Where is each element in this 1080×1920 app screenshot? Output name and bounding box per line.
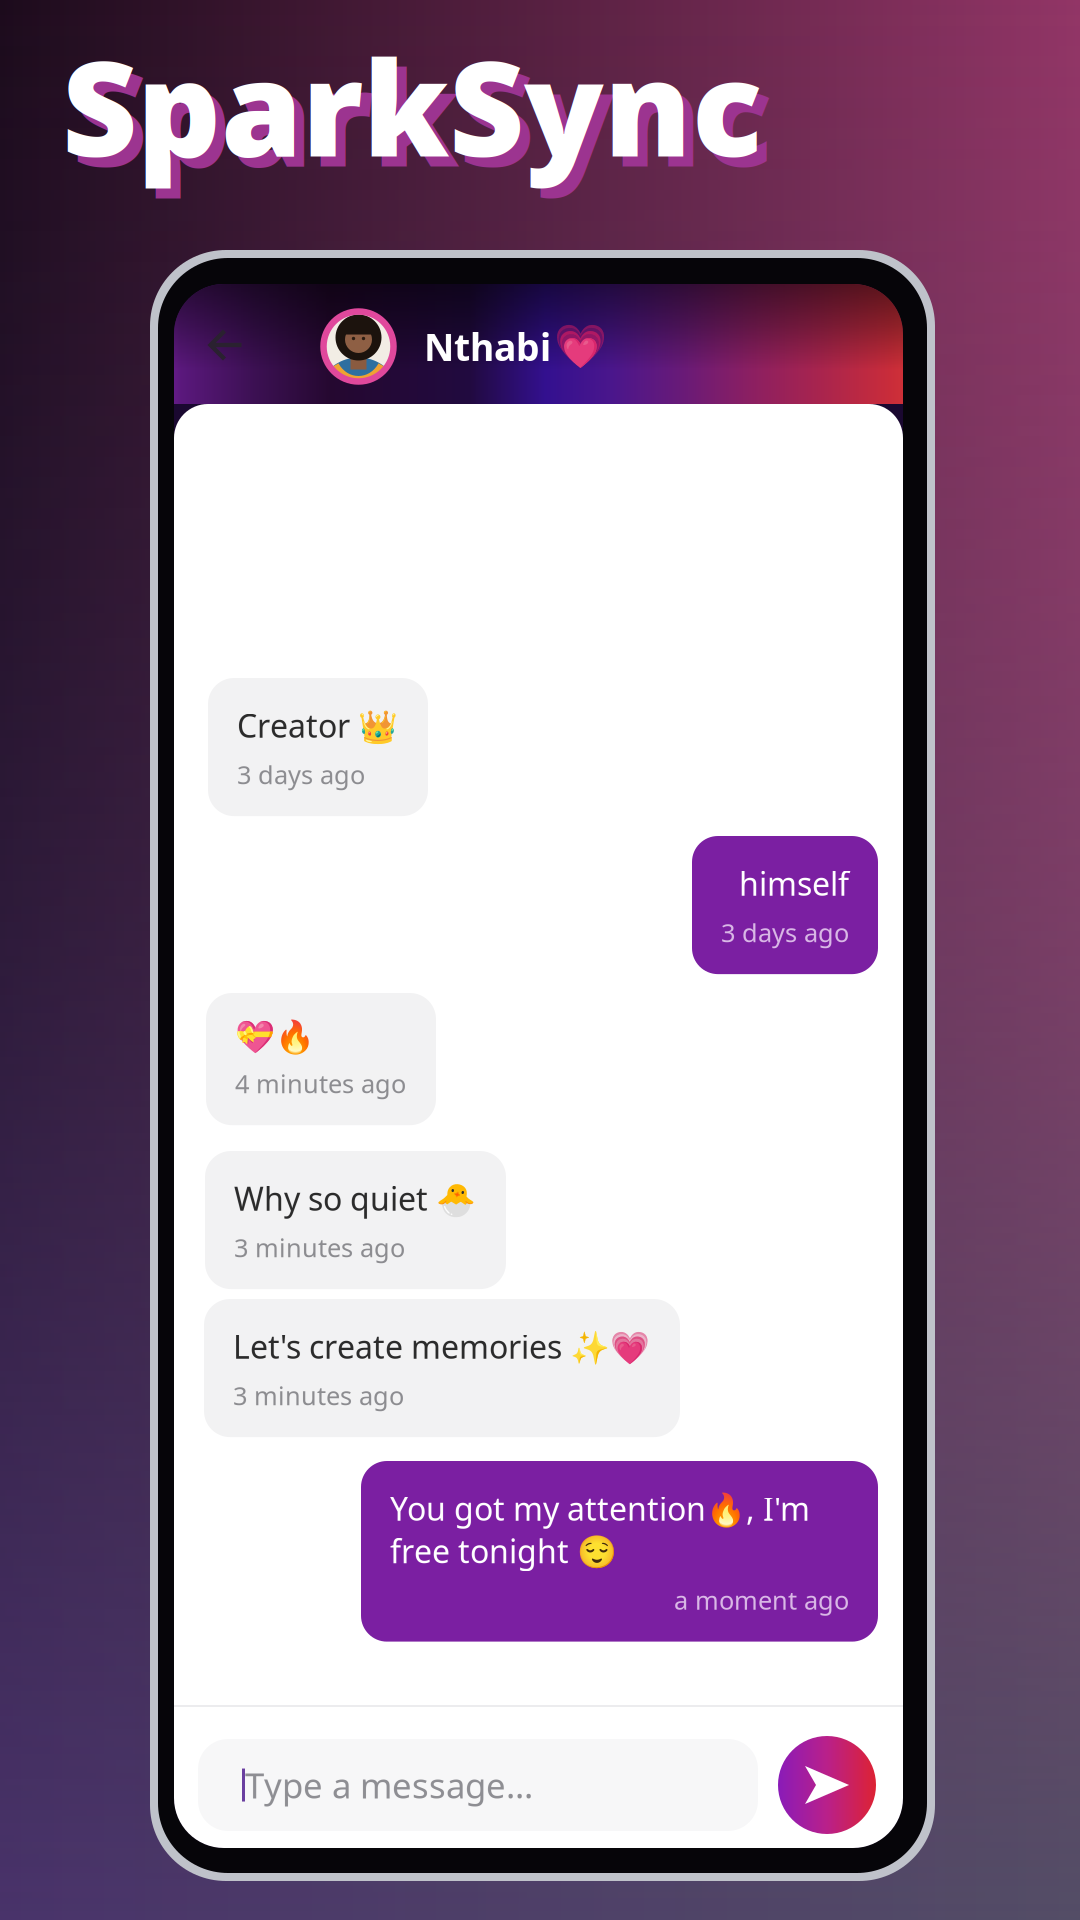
staticText: 4 minutes ago bbox=[235, 1067, 406, 1100]
button[interactable]: Send bbox=[778, 1736, 876, 1834]
staticText: 💝🔥 bbox=[235, 1019, 315, 1056]
button[interactable]: Back bbox=[193, 315, 259, 377]
staticText: 3 minutes ago bbox=[234, 1230, 405, 1264]
staticText: 💗 bbox=[554, 322, 607, 371]
staticText: 3 days ago bbox=[721, 915, 849, 949]
staticText: Why so quiet 🐣 bbox=[234, 1177, 476, 1219]
staticText: You got my attention🔥, I'm free tonight … bbox=[390, 1487, 810, 1572]
staticText: SparkSync bbox=[62, 19, 762, 192]
staticText: a moment ago bbox=[674, 1583, 849, 1617]
staticText: 3 minutes ago bbox=[233, 1378, 404, 1412]
staticText: 3 days ago bbox=[237, 757, 365, 791]
staticText: SparkSync bbox=[72, 29, 772, 202]
button[interactable]: Type a message... bbox=[198, 1739, 758, 1831]
staticText: Nthabi bbox=[424, 322, 551, 371]
staticText: Let's create memories ✨💗 bbox=[233, 1325, 650, 1367]
staticText: himself bbox=[739, 862, 849, 904]
staticText: Type a message... bbox=[245, 1762, 533, 1808]
button[interactable]: Nthabi bbox=[317, 305, 607, 388]
staticText: Creator 👑 bbox=[237, 704, 398, 746]
